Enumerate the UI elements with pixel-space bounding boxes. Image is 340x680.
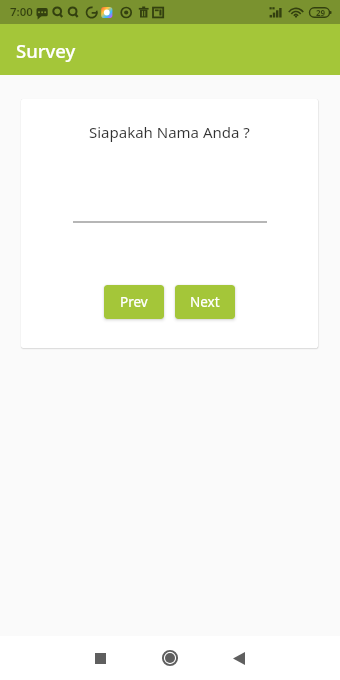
staticText: 7:00 xyxy=(10,4,33,20)
staticText: Siapakah Nama Anda ? xyxy=(89,122,250,142)
staticText: Next xyxy=(190,293,220,311)
staticText: 29 xyxy=(316,7,326,18)
staticText: Survey xyxy=(16,38,76,63)
button[interactable]: Answer text field xyxy=(73,189,267,223)
button[interactable]: Prev xyxy=(104,285,164,319)
staticText: Prev xyxy=(120,293,148,311)
button[interactable]: Home xyxy=(145,636,194,680)
button[interactable]: Recent apps xyxy=(76,636,125,680)
button[interactable]: Next xyxy=(175,285,235,319)
button[interactable]: Back xyxy=(214,636,263,680)
